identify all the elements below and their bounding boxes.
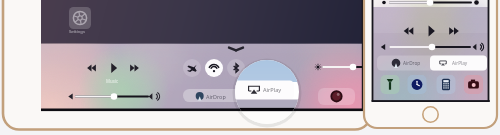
button[interactable]: Home: [423, 106, 439, 122]
staticText: AirPlay: [452, 60, 468, 66]
button[interactable]: [0, 0, 500, 135]
staticText: AirPlay: [263, 86, 282, 94]
staticText: Settings: [69, 29, 85, 35]
button[interactable]: AirPlay: [231, 80, 296, 98]
button[interactable]: Bluetooth: [227, 59, 245, 77]
button[interactable]: Airplane mode: [183, 59, 201, 77]
staticText: AirDrop: [206, 93, 226, 100]
staticText: AirDrop: [403, 60, 421, 66]
staticText: Music: [106, 78, 119, 84]
other: AirPlay control centre: [0, 0, 500, 135]
button[interactable]: Wi-Fi: [205, 59, 223, 77]
button[interactable]: AirDrop: [183, 89, 249, 102]
button[interactable]: Play: [105, 62, 122, 75]
